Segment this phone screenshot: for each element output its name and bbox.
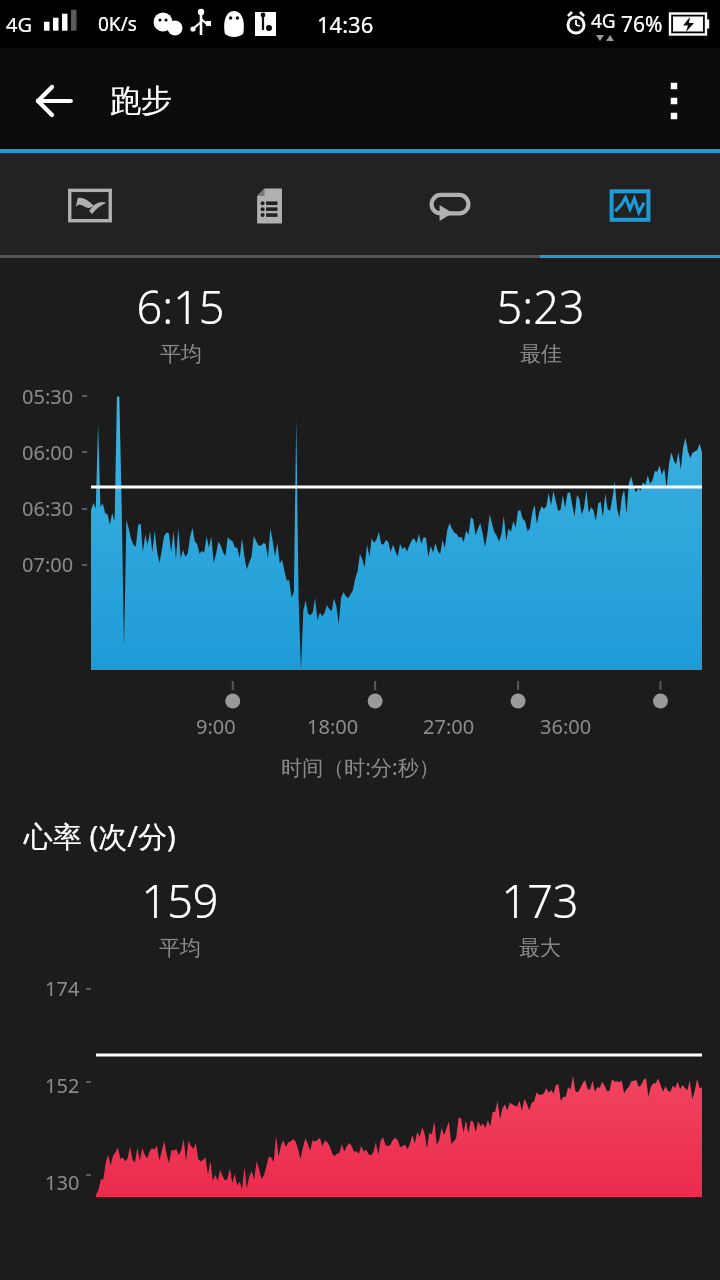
staticText: 最佳 — [520, 341, 562, 367]
staticText: 06:00 — [22, 439, 74, 466]
staticText: 14:36 — [317, 9, 374, 39]
staticText: 07:00 — [22, 551, 74, 578]
staticText: 6:15 — [136, 276, 225, 337]
staticText: 174 — [45, 975, 80, 1002]
staticText: 跑步 — [110, 81, 172, 120]
staticText: 9:00 — [196, 713, 236, 740]
staticText: 时间（时:分:秒） — [281, 753, 440, 782]
staticText: 36:00 — [540, 713, 592, 740]
staticText: 05:30 — [22, 383, 74, 410]
staticText: 173 — [501, 870, 579, 931]
button[interactable]: Route map — [0, 153, 180, 258]
button[interactable]: Back — [18, 65, 90, 137]
button[interactable]: Charts — [540, 153, 720, 258]
staticText: 06:30 — [22, 495, 74, 522]
staticText: 152 — [45, 1072, 80, 1099]
staticText: 最大 — [519, 935, 561, 961]
staticText: 心率 (次/分) — [24, 816, 176, 856]
staticText: 0K/s — [98, 11, 137, 37]
staticText: 18:00 — [307, 713, 359, 740]
staticText: 130 — [45, 1169, 80, 1196]
staticText: 159 — [141, 870, 219, 931]
button[interactable]: Details — [180, 153, 360, 258]
staticText: 76% — [621, 10, 663, 39]
button[interactable]: More options — [642, 69, 706, 133]
staticText: 27:00 — [423, 713, 475, 740]
staticText: 5:23 — [496, 276, 585, 337]
staticText: 4G — [6, 11, 32, 38]
staticText: 4G — [591, 8, 616, 34]
button[interactable]: Laps — [360, 153, 540, 258]
staticText: 平均 — [160, 341, 202, 367]
staticText: 平均 — [159, 935, 201, 961]
